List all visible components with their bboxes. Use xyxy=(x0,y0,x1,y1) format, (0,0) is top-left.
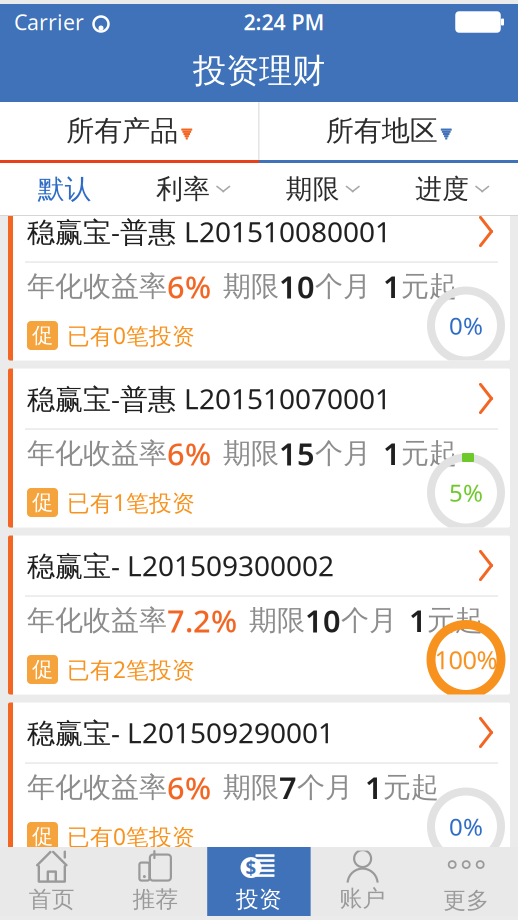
staticText: 推荐 xyxy=(132,886,178,913)
staticText: 1 xyxy=(365,767,383,808)
staticText: 10 xyxy=(279,266,315,307)
staticText: 促 xyxy=(32,823,53,850)
staticText: 10 xyxy=(305,600,341,641)
staticText: 促 xyxy=(32,489,53,516)
staticText: 15 xyxy=(279,433,315,474)
staticText: 首页 xyxy=(29,886,75,913)
staticText: 元起 xyxy=(383,770,439,805)
staticText: 6% xyxy=(167,433,211,474)
button[interactable]: $ xyxy=(207,847,311,916)
button[interactable]: 利率 xyxy=(129,163,259,215)
staticText: 投资理财 xyxy=(193,50,325,91)
staticText: 所有产品 xyxy=(66,114,178,148)
staticText: 已有0笔投资 xyxy=(67,821,195,851)
button[interactable]: 所有地区 xyxy=(259,102,518,160)
staticText: 6% xyxy=(167,266,211,307)
staticText: 期限 xyxy=(223,770,279,805)
button[interactable]: 稳赢宝-普惠 L201510070001 xyxy=(0,368,518,527)
staticText: 个月 xyxy=(315,269,371,304)
staticText: 稳赢宝-普惠 L201510080001 xyxy=(27,213,391,250)
staticText: 2:24 PM xyxy=(243,8,324,36)
staticText: 年化收益率 xyxy=(27,603,167,638)
staticText: 稳赢宝- L201509290001 xyxy=(27,714,334,751)
button[interactable]: 稳赢宝- L201509290001 xyxy=(0,702,518,861)
staticText: 已有0笔投资 xyxy=(67,320,195,350)
button[interactable]: 推荐 xyxy=(104,847,207,916)
staticText: 更多 xyxy=(443,887,489,914)
button[interactable]: 首页 xyxy=(0,847,104,916)
staticText: 所有地区 xyxy=(326,114,438,148)
staticText: 投资 xyxy=(236,886,282,913)
staticText: 6% xyxy=(167,767,211,808)
staticText: 1 xyxy=(383,433,401,474)
staticText: 个月 xyxy=(297,770,353,805)
staticText: 个月 xyxy=(341,603,397,638)
staticText: 稳赢宝-普惠 L201510070001 xyxy=(27,380,391,417)
button[interactable]: 稳赢宝- L201509300002 xyxy=(0,535,518,694)
staticText: 1 xyxy=(383,266,401,307)
button[interactable]: 进度 xyxy=(388,163,518,215)
staticText: 促 xyxy=(32,656,53,683)
staticText: 元起 xyxy=(401,269,457,304)
staticText: 元起 xyxy=(401,436,457,471)
button[interactable]: 期限 xyxy=(259,163,388,215)
staticText: Carrier xyxy=(14,8,84,36)
staticText: 个月 xyxy=(315,436,371,471)
staticText: 期限 xyxy=(249,603,305,638)
button[interactable]: 更多 xyxy=(414,847,518,916)
staticText: $ xyxy=(245,855,256,880)
staticText: 年化收益率 xyxy=(27,436,167,471)
staticText: 7 xyxy=(279,767,297,808)
button[interactable]: 默认 xyxy=(0,163,129,215)
staticText: 7.2% xyxy=(167,600,237,641)
staticText: 期限 xyxy=(223,436,279,471)
staticText: 已有2笔投资 xyxy=(67,654,195,684)
staticText: 年化收益率 xyxy=(27,269,167,304)
button[interactable]: 稳赢宝-普惠 L201510080001 xyxy=(0,201,518,360)
staticText: 期限 xyxy=(223,269,279,304)
staticText: 元起 xyxy=(427,603,483,638)
staticText: 0% xyxy=(449,310,483,341)
staticText: 1 xyxy=(409,600,427,641)
staticText: 期限 xyxy=(286,173,340,205)
staticText: 100% xyxy=(434,643,497,676)
staticText: 0% xyxy=(449,811,483,842)
staticText: 年化收益率 xyxy=(27,770,167,805)
staticText: 已有1笔投资 xyxy=(67,487,195,517)
staticText: 默认 xyxy=(38,173,92,205)
button[interactable]: 所有产品 xyxy=(0,102,258,160)
staticText: 进度 xyxy=(415,173,469,205)
staticText: 稳赢宝- L201509300002 xyxy=(27,547,334,584)
staticText: 5% xyxy=(449,477,483,508)
staticText: 促 xyxy=(32,322,53,349)
staticText: 账户 xyxy=(340,885,386,912)
button[interactable]: 账户 xyxy=(311,847,414,916)
staticText: 利率 xyxy=(156,173,210,205)
